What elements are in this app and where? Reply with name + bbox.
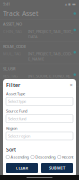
button[interactable]: Select fund [6, 115, 73, 123]
staticText: ASSET_NO [3, 21, 22, 27]
staticText: INT_SOURCE_FUND_REGISTER [28, 73, 71, 84]
staticText: Ascending [10, 154, 28, 160]
staticText: Source Fund [6, 108, 27, 114]
staticText: SI_USR [3, 66, 15, 71]
staticText: Select region [8, 133, 30, 139]
button[interactable]: Ascending [6, 154, 28, 160]
staticText: Asset Type [6, 91, 25, 96]
button[interactable]: CLEAR [6, 163, 38, 173]
staticText: ✕ [69, 83, 72, 87]
staticText: Sort [6, 146, 16, 153]
staticText: ROLM_CODE [3, 44, 26, 49]
staticText: RES_TAG [3, 73, 18, 79]
button[interactable]: Recent [57, 154, 73, 160]
button[interactable]: Select type [6, 97, 73, 105]
staticText: Recent [62, 154, 73, 160]
button[interactable]: Close [68, 82, 74, 88]
staticText: INT_PROJECT_TAB_CODE_NAME [28, 51, 72, 62]
staticText: MUL_TAG [3, 51, 21, 56]
staticText: ▴ ▪ ▬ [65, 2, 76, 6]
button[interactable]: SUBMIT [41, 163, 73, 173]
button[interactable]: Descending [31, 154, 55, 160]
staticText: Region [6, 126, 17, 131]
button[interactable]: Select region [6, 132, 73, 140]
staticText: CLEAR [15, 165, 28, 171]
staticText: Track Asset [3, 9, 38, 18]
staticText: Select type [8, 99, 26, 104]
staticText: 9:41 [3, 1, 10, 7]
staticText: INT_PROJECT_TAB_TEXT_DATA [28, 29, 73, 39]
staticText: CHIN_TAG [3, 29, 22, 34]
staticText: Filter [6, 81, 20, 89]
staticText: Descending [35, 154, 55, 160]
staticText: SUBMIT [49, 165, 65, 171]
staticText: Select fund [8, 116, 26, 121]
